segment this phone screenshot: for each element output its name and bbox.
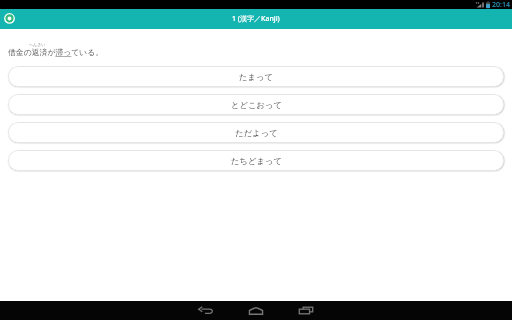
button[interactable]: とどこおって [8, 94, 504, 115]
button[interactable]: ただよって [8, 122, 504, 143]
button[interactable]: たちどまって [8, 150, 504, 171]
staticText: たまって [239, 72, 273, 82]
button[interactable]: Recents [289, 301, 323, 320]
staticText: へんさい [29, 42, 46, 47]
staticText: 借金の返済が滞っている。 [8, 47, 104, 57]
button[interactable]: Home [239, 301, 273, 320]
button[interactable]: App icon [4, 10, 22, 28]
button[interactable]: Back [189, 301, 223, 320]
staticText: 20:14 [492, 0, 510, 9]
button[interactable]: たまって [8, 66, 504, 87]
staticText: たちどまって [231, 156, 282, 166]
staticText: ただよって [235, 128, 278, 138]
staticText: 1 (漢字／Kanji) [232, 14, 280, 24]
staticText: とどこおって [231, 100, 282, 110]
